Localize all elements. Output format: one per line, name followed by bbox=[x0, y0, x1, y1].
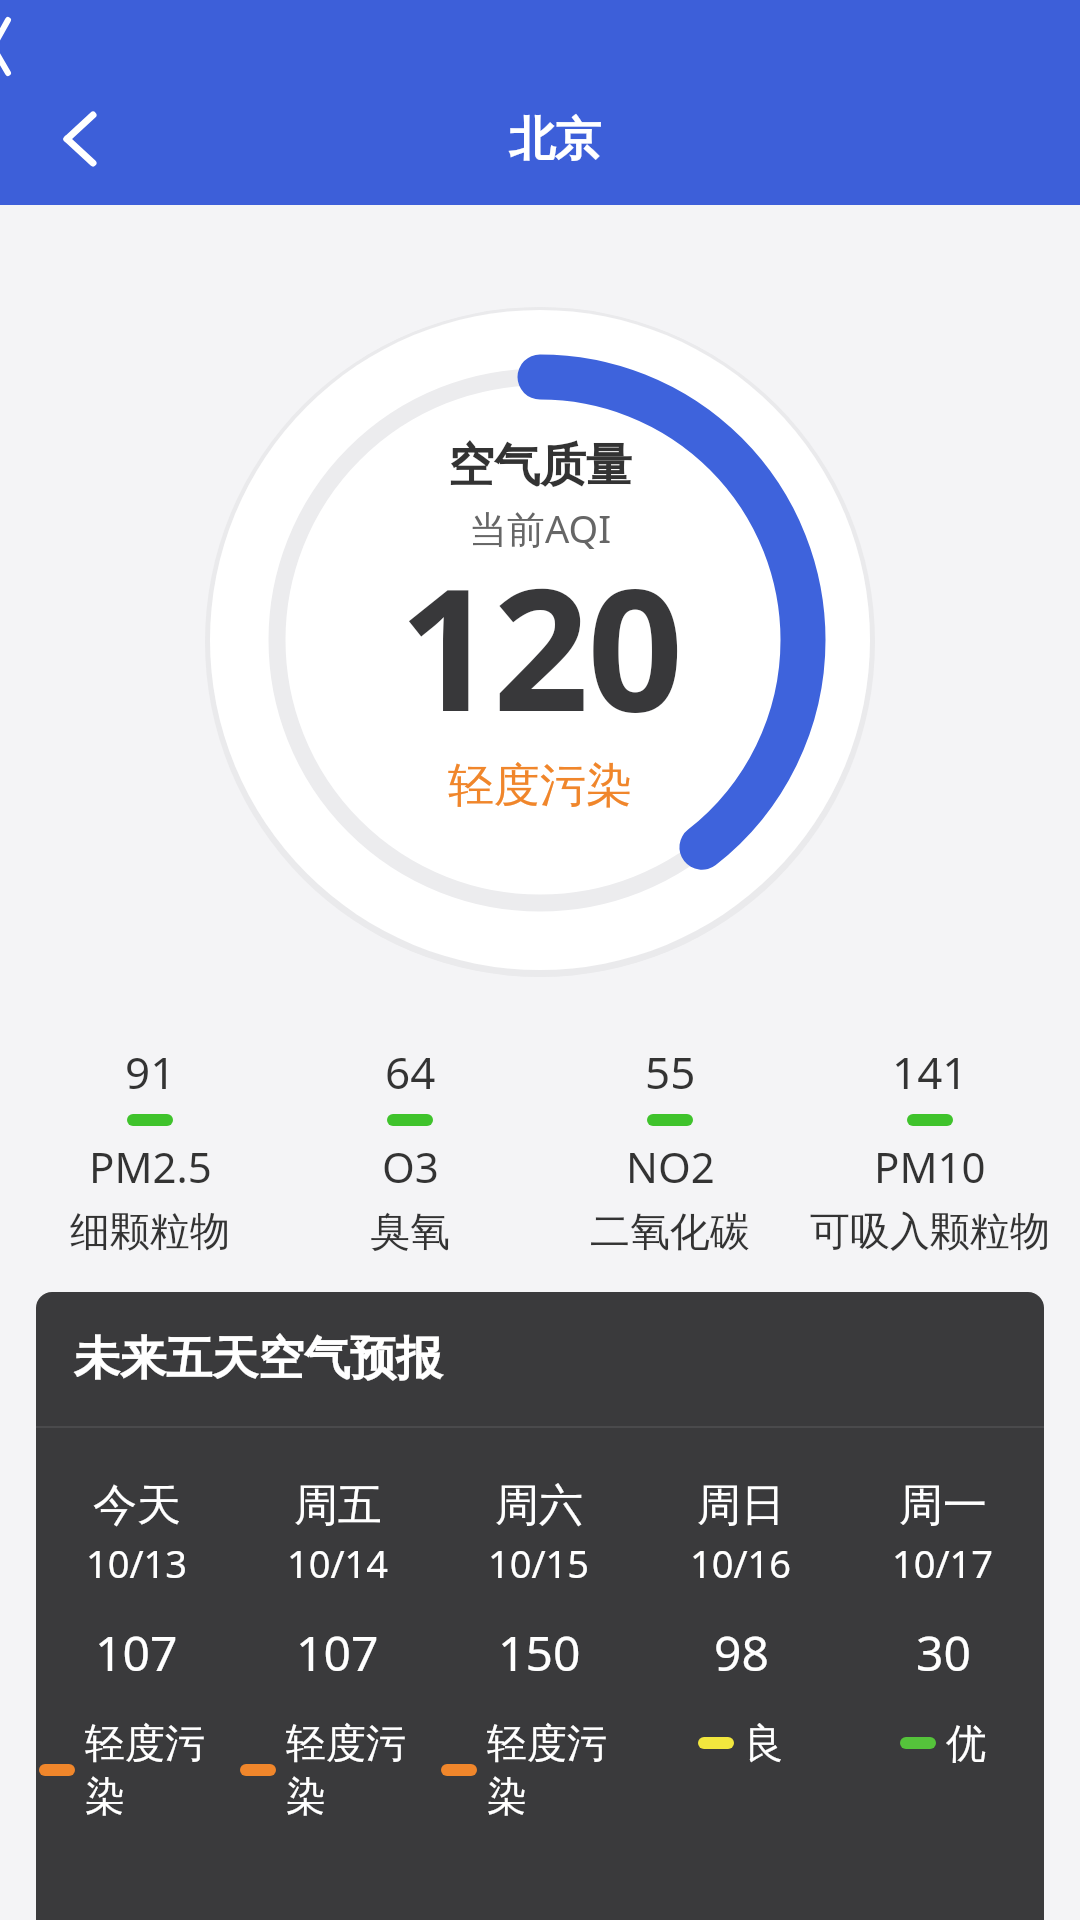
staticText: 107 bbox=[95, 1620, 178, 1685]
staticText: PM10 bbox=[874, 1138, 986, 1195]
staticText: NO2 bbox=[626, 1138, 715, 1195]
staticText: 可吸入颗粒物 bbox=[810, 1206, 1050, 1256]
button[interactable]: 91 bbox=[20, 1042, 280, 1256]
staticText: 98 bbox=[714, 1620, 769, 1685]
button[interactable]: 55 bbox=[540, 1042, 800, 1256]
staticText: 10/15 bbox=[488, 1537, 590, 1589]
button[interactable]: 周六 bbox=[438, 1478, 640, 1822]
staticText: 107 bbox=[296, 1620, 379, 1685]
staticText: 良 bbox=[744, 1718, 784, 1768]
staticText: 10/16 bbox=[690, 1537, 792, 1589]
staticText: 优 bbox=[946, 1718, 986, 1768]
button[interactable]: 周日 bbox=[640, 1478, 842, 1768]
staticText: 轻度污染 bbox=[286, 1718, 436, 1822]
staticText: 轻度污染 bbox=[487, 1718, 637, 1822]
staticText: 二氧化碳 bbox=[590, 1206, 750, 1256]
staticText: 周一 bbox=[899, 1478, 987, 1533]
button[interactable]: 141 bbox=[800, 1042, 1060, 1256]
staticText: 141 bbox=[892, 1042, 968, 1102]
staticText: 10/13 bbox=[86, 1537, 188, 1589]
staticText: 空气质量 bbox=[448, 437, 632, 495]
button[interactable]: 周五 bbox=[237, 1478, 438, 1822]
staticText: 120 bbox=[399, 531, 682, 731]
staticText: 64 bbox=[385, 1042, 436, 1102]
button[interactable]: 64 bbox=[280, 1042, 540, 1256]
staticText: 当前AQI bbox=[469, 502, 612, 554]
staticText: 轻度污染 bbox=[448, 757, 632, 815]
staticText: 未来五天空气预报 bbox=[74, 1330, 442, 1388]
staticText: 今天 bbox=[93, 1478, 181, 1533]
staticText: 10/14 bbox=[287, 1537, 389, 1589]
staticText: 周五 bbox=[294, 1478, 382, 1533]
staticText: 91 bbox=[125, 1042, 176, 1102]
staticText: 细颗粒物 bbox=[70, 1206, 230, 1256]
staticText: 臭氧 bbox=[370, 1206, 450, 1256]
staticText: 轻度污染 bbox=[85, 1718, 235, 1822]
button[interactable]: 今天 bbox=[36, 1478, 237, 1822]
staticText: 10/17 bbox=[892, 1537, 994, 1589]
staticText: O3 bbox=[382, 1138, 439, 1195]
staticText: 周日 bbox=[697, 1478, 785, 1533]
button[interactable] bbox=[40, 99, 120, 179]
staticText: PM2.5 bbox=[89, 1138, 212, 1195]
staticText: 北京 bbox=[509, 111, 601, 169]
staticText: 30 bbox=[916, 1620, 971, 1685]
staticText: 55 bbox=[645, 1042, 696, 1102]
staticText: 150 bbox=[498, 1620, 581, 1685]
button[interactable]: 周一 bbox=[842, 1478, 1044, 1768]
staticText: 周六 bbox=[495, 1478, 583, 1533]
